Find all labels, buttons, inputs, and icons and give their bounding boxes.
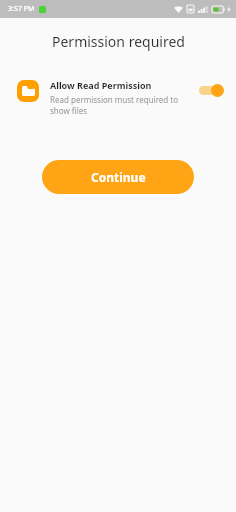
button[interactable]: Allow Read Permission toggle bbox=[198, 83, 224, 97]
button[interactable]: Continue bbox=[42, 160, 194, 194]
other: Read permission folder bbox=[17, 80, 39, 102]
staticText: Permission required bbox=[52, 32, 185, 51]
staticText: 3:57 PM bbox=[8, 4, 35, 14]
staticText: Allow Read Permission bbox=[50, 79, 152, 91]
button[interactable]: Read permission folder bbox=[0, 78, 236, 116]
staticText: Continue bbox=[91, 169, 146, 185]
staticText: Read permission must required to show fi… bbox=[50, 94, 192, 116]
